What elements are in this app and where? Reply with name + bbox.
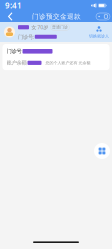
staticText: 门诊预交金退款 <box>32 12 81 21</box>
button[interactable]: 切换就诊人 <box>88 25 110 38</box>
staticText: 9:41 <box>5 0 22 11</box>
staticText: 账户余额 <box>6 60 26 66</box>
button[interactable]: 更多 <box>96 13 110 20</box>
staticText: 您的个人账户还有 元余额 <box>45 60 90 65</box>
button[interactable]: 扫一扫 <box>94 143 110 159</box>
staticText: 门诊号: <box>18 33 34 40</box>
staticText: 门诊号 <box>6 48 21 55</box>
staticText: 切换就诊人 <box>89 34 109 38</box>
staticText: 女 70岁 <box>31 24 48 31</box>
staticText: 普通门诊 <box>52 25 68 30</box>
button[interactable]: 返回 <box>3 10 17 23</box>
